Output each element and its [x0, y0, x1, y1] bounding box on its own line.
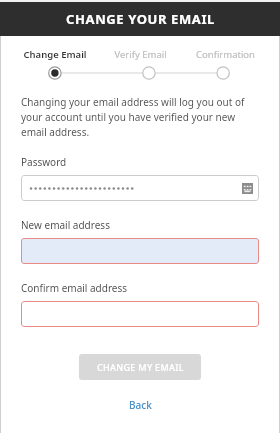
- button[interactable]: Back: [121, 396, 160, 414]
- staticText: CHANGE YOUR EMAIL: [66, 10, 215, 28]
- button[interactable]: Change Email: [12, 48, 98, 61]
- staticText: New email address: [21, 218, 110, 232]
- button[interactable]: Verify Email: [98, 48, 183, 61]
- staticText: Change Email: [23, 48, 87, 61]
- staticText: Confirmation: [196, 48, 255, 61]
- button[interactable]: CHANGE MY EMAIL: [79, 354, 201, 380]
- button[interactable]: [21, 238, 259, 264]
- staticText: Back: [129, 398, 152, 412]
- button[interactable]: Show password keyboard: [242, 183, 253, 194]
- staticText: Password: [21, 155, 67, 169]
- button[interactable]: [21, 301, 259, 327]
- staticText: CHANGE MY EMAIL: [97, 361, 184, 373]
- staticText: Changing your email address will log you…: [21, 95, 259, 139]
- staticText: Verify Email: [114, 48, 167, 61]
- staticText: Confirm email address: [21, 281, 128, 295]
- button[interactable]: Show password keyboard: [21, 175, 259, 201]
- button[interactable]: Confirmation: [183, 48, 268, 61]
